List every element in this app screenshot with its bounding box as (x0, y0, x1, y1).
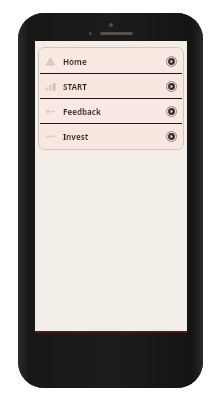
staticText: Feedback (63, 106, 101, 117)
button[interactable]: Home (40, 49, 182, 73)
staticText: Invest (63, 131, 89, 142)
button[interactable]: Feedback (40, 99, 182, 123)
staticText: START (63, 81, 87, 92)
button[interactable]: START (40, 74, 182, 98)
other: Open (166, 131, 177, 142)
staticText: Home (63, 56, 87, 67)
other: Open (166, 81, 177, 92)
other: Open (166, 56, 177, 67)
button[interactable]: Invest (40, 124, 182, 148)
other: Open (166, 106, 177, 117)
